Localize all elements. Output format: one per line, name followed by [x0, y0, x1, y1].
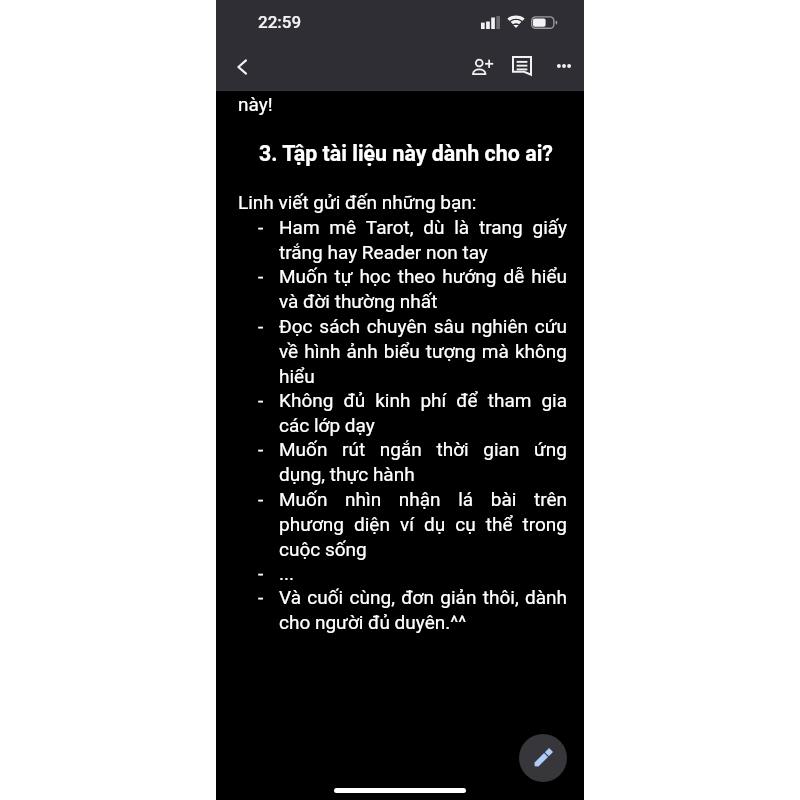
staticText: này!: [238, 93, 273, 115]
staticText: Linh viết gửi đến những bạn:: [238, 191, 477, 213]
staticText: -: [258, 586, 264, 608]
staticText: -: [258, 389, 264, 411]
staticText: Ham mê Tarot, dù là trang giấy trắng hay…: [279, 216, 567, 263]
staticText: Không đủ kinh phí để tham gia các lớp dạ…: [279, 389, 567, 436]
staticText: -: [258, 315, 264, 337]
staticText: Muốn tự học theo hướng dễ hiểu và đời th…: [279, 265, 567, 312]
staticText: 3. Tập tài liệu này dành cho ai?: [259, 141, 553, 166]
staticText: Và cuối cùng, đơn giản thôi, dành cho ng…: [279, 586, 567, 633]
staticText: -: [258, 562, 264, 584]
staticText: 22:59: [258, 12, 302, 32]
staticText: -: [258, 488, 264, 510]
staticText: -: [258, 438, 264, 460]
button[interactable]: More options: [541, 43, 586, 88]
staticText: -: [258, 265, 264, 287]
staticText: Muốn rút ngắn thời gian ứng dụng, thực h…: [279, 438, 567, 485]
button[interactable]: Compose: [519, 734, 567, 782]
button[interactable]: Back: [220, 45, 264, 89]
button[interactable]: Comments: [499, 43, 545, 89]
button[interactable]: Add people: [459, 43, 505, 89]
staticText: Muốn nhìn nhận lá bài trên phương diện v…: [279, 488, 567, 560]
staticText: ...: [279, 562, 295, 584]
staticText: Đọc sách chuyên sâu nghiên cứu về hình ả…: [279, 315, 567, 387]
staticText: -: [258, 216, 264, 238]
